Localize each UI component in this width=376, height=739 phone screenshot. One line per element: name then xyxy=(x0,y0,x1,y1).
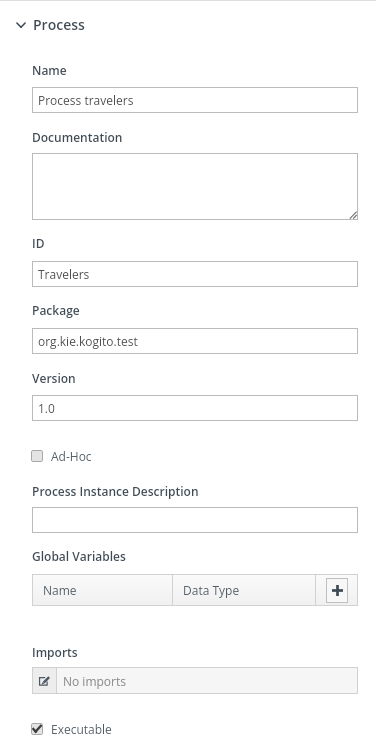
staticText: Name xyxy=(43,582,77,598)
staticText: Global Variables xyxy=(32,548,126,564)
staticText: Documentation xyxy=(32,129,123,145)
staticText: Process Instance Description xyxy=(32,483,199,499)
staticText: Data Type xyxy=(183,582,240,598)
staticText: Name xyxy=(32,62,67,78)
staticText: No imports xyxy=(63,673,126,689)
button[interactable]: Executable xyxy=(31,719,112,739)
button[interactable]: Add global variable xyxy=(326,578,348,603)
staticText: Package xyxy=(32,302,80,318)
staticText: Executable xyxy=(51,721,112,737)
button[interactable]: Process xyxy=(12,11,89,38)
staticText: Imports xyxy=(32,644,78,660)
button[interactable]: Edit imports xyxy=(32,668,56,693)
staticText: Process xyxy=(33,15,85,34)
staticText: ID xyxy=(32,235,45,251)
staticText: Travelers xyxy=(38,266,90,282)
staticText: 1.0 xyxy=(38,400,55,416)
button[interactable]: org.kie.kogito.test xyxy=(32,328,358,354)
button[interactable]: 1.0 xyxy=(32,395,358,421)
button[interactable] xyxy=(32,153,358,220)
button[interactable]: Ad-Hoc xyxy=(31,446,92,466)
button[interactable]: Travelers xyxy=(32,261,358,287)
button[interactable] xyxy=(32,507,358,533)
button[interactable]: Process travelers xyxy=(32,87,358,113)
staticText: Ad-Hoc xyxy=(51,448,92,464)
staticText: org.kie.kogito.test xyxy=(38,333,138,349)
staticText: Version xyxy=(32,370,76,386)
staticText: Process travelers xyxy=(38,92,134,108)
